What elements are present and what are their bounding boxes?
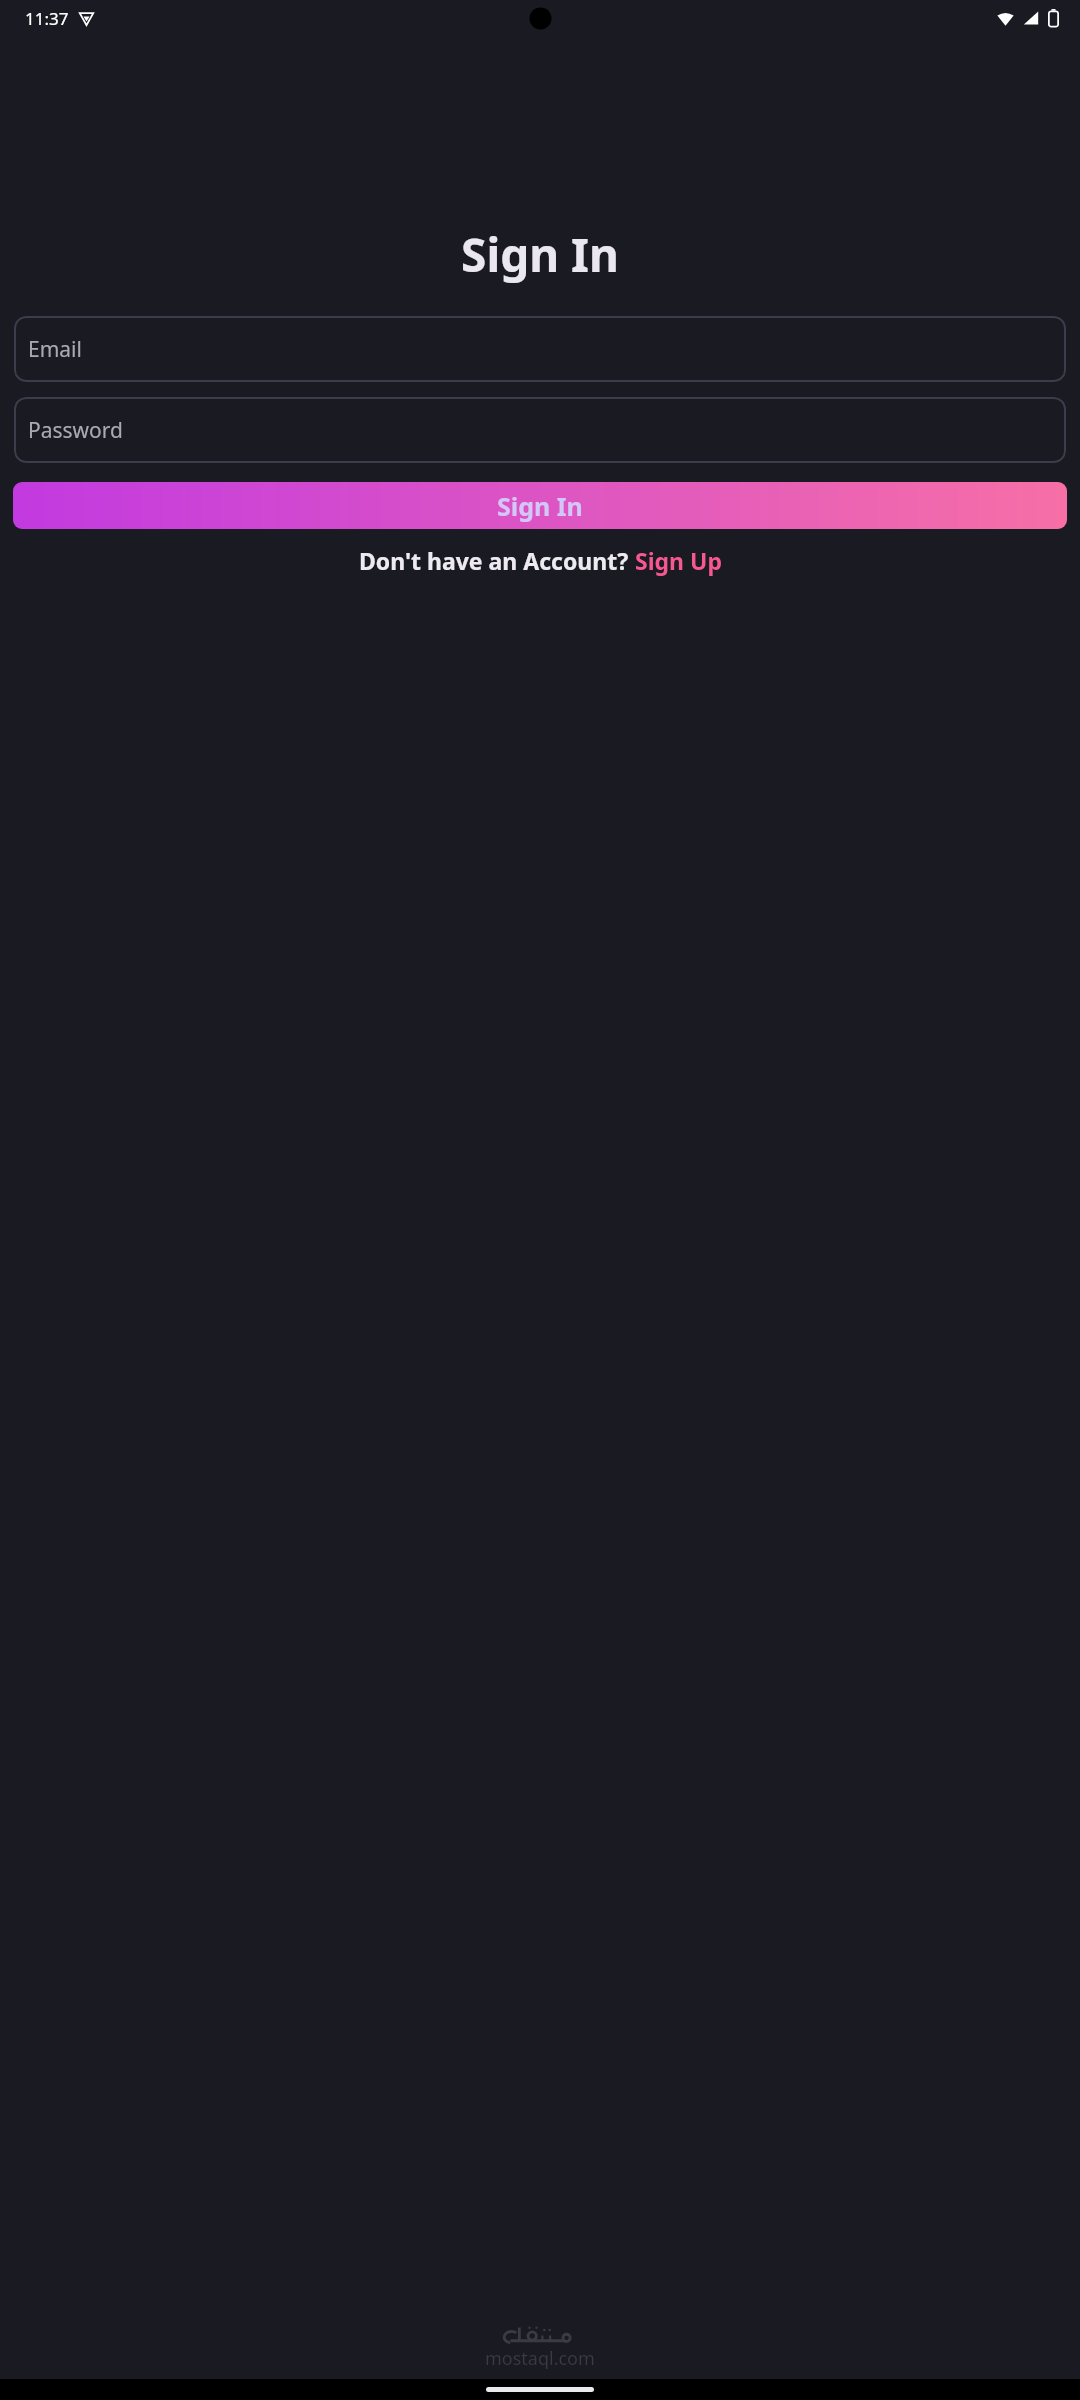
button[interactable]: Don't have an Account? (349, 541, 732, 580)
staticText: Email (28, 335, 82, 364)
button[interactable]: Email (14, 316, 1066, 382)
staticText: 11:37 (25, 7, 69, 30)
staticText: Don't have an Account? (359, 545, 635, 576)
other: Notification (79, 11, 94, 26)
staticText: Password (28, 416, 123, 445)
button[interactable]: Sign In (13, 482, 1067, 529)
button[interactable]: Password (14, 397, 1066, 463)
other: Cellular signal (1023, 10, 1039, 26)
other: Wi-Fi (997, 10, 1014, 27)
staticText: Sign Up (635, 545, 722, 576)
staticText: Sign In (461, 223, 619, 286)
staticText: mostaql.com (485, 2346, 595, 2371)
staticText: Sign In (497, 489, 583, 523)
other: Battery (1048, 9, 1059, 27)
